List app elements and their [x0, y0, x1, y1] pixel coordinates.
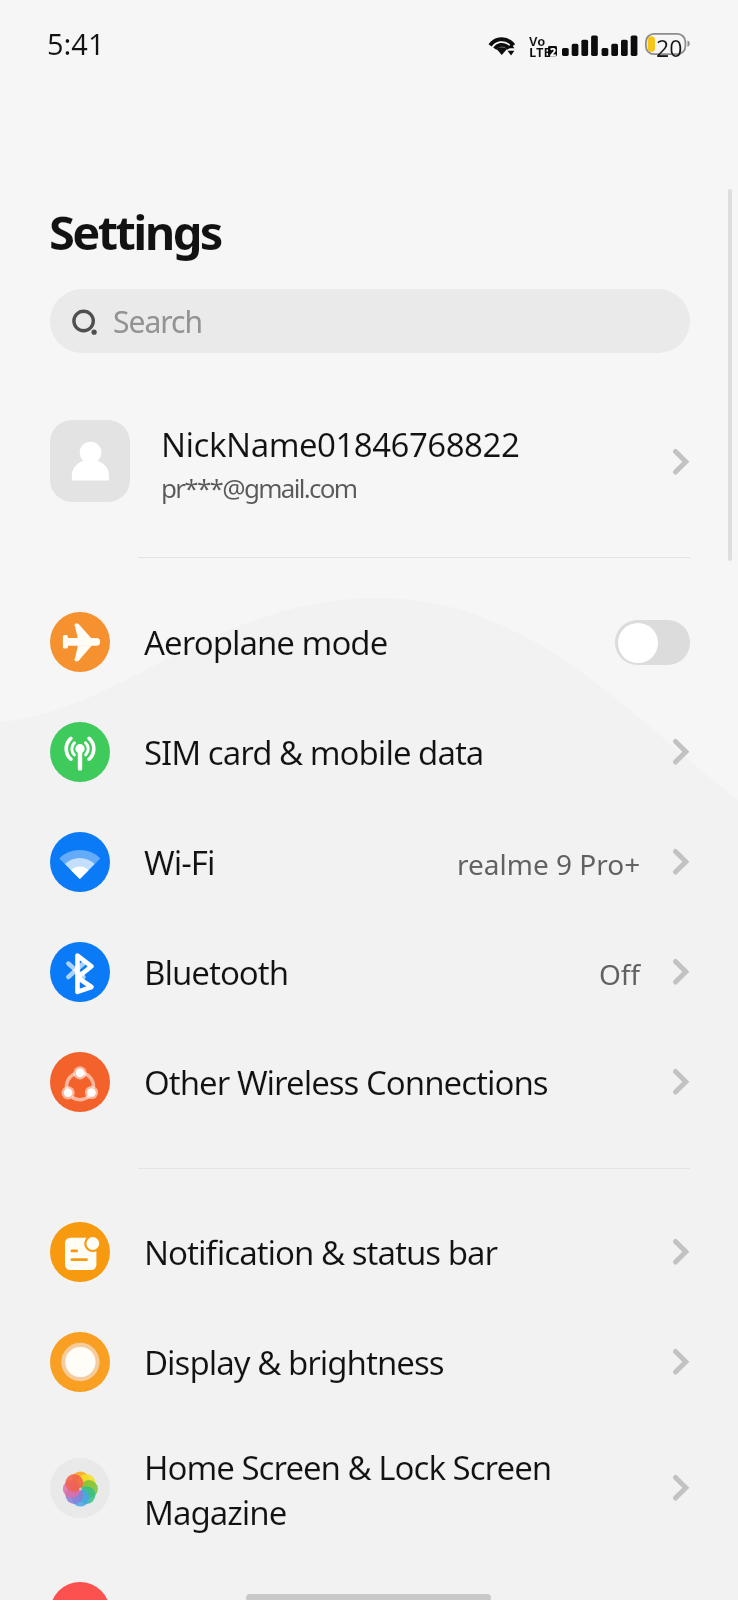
- button[interactable]: Notification & status bar: [0, 1197, 738, 1307]
- button[interactable]: Aeroplane mode toggle: [615, 620, 690, 665]
- staticText: Bluetooth: [144, 950, 289, 995]
- staticText: pr***@gmail.com: [161, 470, 357, 505]
- staticText: 5:41: [47, 24, 105, 63]
- staticText: Notification & status bar: [144, 1230, 498, 1275]
- button[interactable]: Aeroplane mode: [0, 587, 738, 697]
- button[interactable]: Search: [50, 289, 690, 353]
- button[interactable]: Bluetooth: [0, 917, 738, 1027]
- button[interactable]: SIM card & mobile data: [0, 697, 738, 807]
- staticText: Search: [113, 301, 202, 342]
- staticText: Settings: [49, 200, 221, 264]
- staticText: NickName01846768822: [161, 422, 520, 467]
- button[interactable]: Home Screen & Lock Screen Magazine: [0, 1433, 738, 1543]
- button[interactable]: Other Wireless Connections: [0, 1027, 738, 1137]
- staticText: Off: [599, 955, 641, 993]
- staticText: Wi-Fi: [144, 840, 215, 885]
- staticText: Other Wireless Connections: [144, 1060, 548, 1105]
- button[interactable]: Wi-Fi: [0, 807, 738, 917]
- staticText: Home Screen & Lock Screen Magazine: [144, 1445, 552, 1535]
- staticText: realme 9 Pro+: [457, 845, 641, 883]
- staticText: SIM card & mobile data: [144, 730, 484, 775]
- staticText: Vo: [529, 32, 546, 50]
- staticText: LTE: [529, 43, 551, 61]
- staticText: 2: [550, 45, 557, 59]
- staticText: 20: [656, 32, 683, 63]
- button[interactable]: NickName01846768822: [0, 408, 738, 514]
- staticText: Aeroplane mode: [144, 620, 388, 665]
- button[interactable]: Display & brightness: [0, 1307, 738, 1417]
- staticText: Display & brightness: [144, 1340, 444, 1385]
